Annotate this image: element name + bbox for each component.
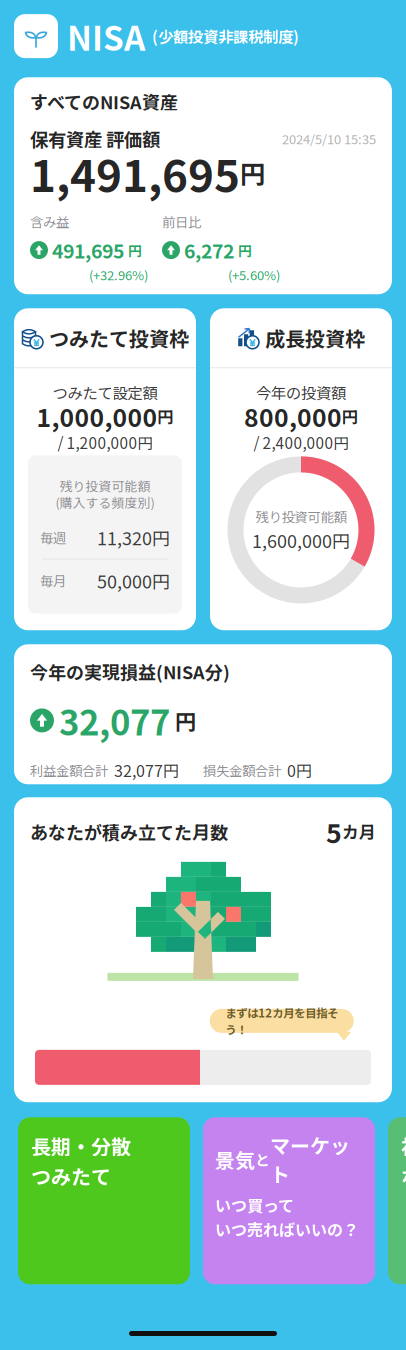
staticText: 円 [238, 240, 252, 260]
staticText: カ月 [342, 819, 376, 844]
staticText: 円 [128, 240, 142, 260]
staticText: (少額投資非課税制度) [152, 25, 299, 47]
staticText: 保有資産 評価額 [30, 125, 160, 152]
staticText: / 1,200,000円 [57, 431, 152, 453]
staticText: 0円 [287, 758, 312, 782]
button[interactable]: 初 [388, 1117, 406, 1284]
staticText: 800,000 [244, 398, 342, 434]
staticText: つみたて投資枠 [49, 323, 189, 352]
staticText: 毎月 [40, 571, 66, 590]
staticText: つみたて [31, 1161, 111, 1190]
staticText: NISA [67, 12, 145, 60]
staticText: な [401, 1161, 406, 1190]
staticText: いつ売ればいいの？ [215, 1217, 359, 1241]
staticText: まずは12カ月を目指そう！ [225, 1004, 338, 1037]
staticText: あなたが積み立てた月数 [30, 818, 228, 845]
staticText: (購入する頻度別) [55, 493, 154, 511]
staticText: 11,320円 [97, 524, 170, 551]
staticText: 円 [342, 405, 358, 428]
staticText: 今年の投資額 [256, 381, 346, 403]
staticText: 1,491,695 [30, 141, 240, 205]
staticText: 円 [175, 705, 196, 736]
staticText: 円 [157, 405, 173, 428]
button[interactable]: 長期・分散 [18, 1117, 190, 1284]
staticText: 5 [326, 812, 342, 851]
staticText: 残り投資可能額 [59, 476, 150, 495]
staticText: 50,000円 [97, 567, 170, 594]
staticText: 損失金額合計 [203, 760, 281, 780]
staticText: 初 [401, 1131, 406, 1160]
staticText: 2024/5/10 15:35 [282, 129, 376, 148]
staticText: 32,077円 [114, 758, 179, 782]
staticText: 前日比 [162, 212, 201, 231]
staticText: 1,600,000円 [252, 527, 350, 553]
staticText: すべてのNISA資産 [30, 88, 178, 114]
staticText: (+5.60%) [228, 265, 280, 284]
staticText: / 2,400,000円 [253, 431, 348, 453]
staticText: 利益金額合計 [30, 760, 108, 780]
staticText: 1,000,000 [36, 398, 157, 434]
staticText: 景気 [215, 1145, 255, 1174]
staticText: つみたて設定額 [52, 381, 157, 403]
staticText: いつ買って [215, 1193, 294, 1216]
staticText: 6,272 [184, 236, 234, 264]
staticText: 円 [240, 154, 265, 191]
staticText: と [255, 1149, 270, 1170]
button[interactable]: 景気 [203, 1117, 375, 1284]
staticText: マーケット [270, 1130, 350, 1188]
staticText: 成長投資枠 [265, 323, 365, 352]
staticText: 含み益 [30, 212, 69, 231]
staticText: (+32.96%) [89, 265, 148, 284]
button[interactable]: NISA [14, 14, 58, 58]
staticText: 残り投資可能額 [255, 507, 346, 526]
staticText: 今年の実現損益(NISA分) [30, 658, 230, 684]
staticText: 491,695 [52, 236, 124, 264]
staticText: 32,077 [59, 695, 170, 745]
staticText: 毎週 [40, 528, 66, 547]
staticText: 長期・分散 [31, 1131, 131, 1160]
